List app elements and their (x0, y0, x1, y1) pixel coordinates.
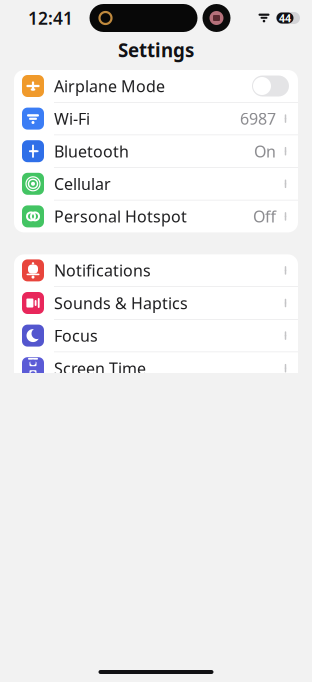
button[interactable]: Personal Hotspot (14, 200, 298, 232)
staticText: Sounds & Haptics (54, 292, 188, 314)
staticText: Screen Time (54, 358, 146, 379)
button[interactable]: Cellular (14, 168, 298, 200)
staticText: Focus (54, 325, 98, 346)
button[interactable]: Notifications (14, 254, 298, 287)
button[interactable]: Airplane Mode (14, 70, 298, 103)
button[interactable]: Bluetooth (14, 135, 298, 168)
staticText: 12:41 (28, 6, 73, 29)
staticText: 44 (279, 11, 291, 25)
staticText: Off (253, 206, 276, 227)
button[interactable]: Focus (14, 320, 298, 352)
staticText: Notifications (54, 260, 151, 281)
staticText: On (254, 141, 276, 162)
staticText: Cellular (54, 173, 111, 194)
button[interactable]: Screen Time (14, 352, 298, 384)
staticText: Personal Hotspot (54, 206, 187, 227)
staticText: Wi-Fi (54, 108, 90, 129)
staticText: Bluetooth (54, 141, 129, 162)
staticText: 6987 (240, 108, 276, 129)
button[interactable]: Sounds & Haptics (14, 287, 298, 320)
staticText: Airplane Mode (54, 75, 165, 97)
staticText: Settings (118, 38, 194, 62)
button[interactable]: Wi-Fi (14, 103, 298, 135)
